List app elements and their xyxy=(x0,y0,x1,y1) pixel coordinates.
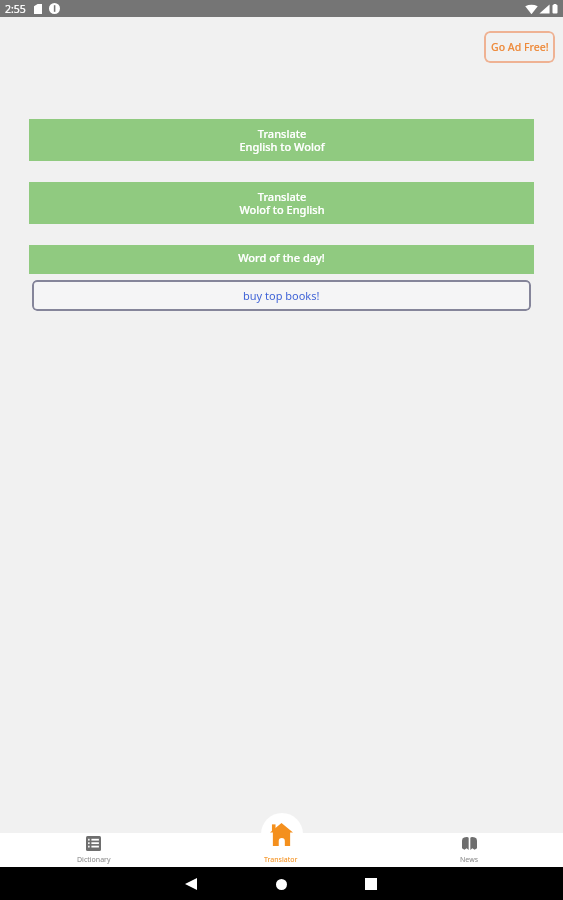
button[interactable]: Recent apps xyxy=(359,872,383,896)
staticText: News xyxy=(460,855,478,865)
button[interactable]: Translator xyxy=(187,833,375,867)
staticText: Translator xyxy=(264,855,298,865)
button[interactable]: Translate English to Wolof xyxy=(29,119,534,161)
button[interactable]: buy top books! xyxy=(32,280,531,311)
staticText: Dictionary xyxy=(77,855,111,865)
button[interactable]: Dictionary xyxy=(0,833,187,867)
button[interactable]: Go Ad Free! xyxy=(484,31,555,63)
button[interactable]: Home xyxy=(269,872,293,896)
button[interactable]: Word of the day! xyxy=(29,245,534,274)
staticText: Go Ad Free! xyxy=(491,40,549,54)
button[interactable]: News xyxy=(375,833,563,867)
staticText: Word of the day! xyxy=(238,250,325,265)
staticText: Translate Wolof to English xyxy=(239,189,325,217)
staticText: buy top books! xyxy=(243,288,320,303)
staticText: Translate English to Wolof xyxy=(239,126,325,154)
button[interactable]: Back xyxy=(179,872,203,896)
staticText: 2:55 xyxy=(5,2,26,16)
button[interactable]: Translate Wolof to English xyxy=(29,182,534,224)
